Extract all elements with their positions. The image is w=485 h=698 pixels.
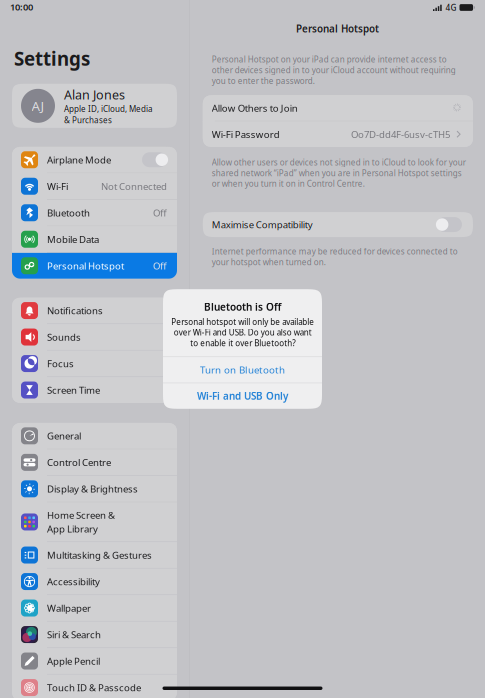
button[interactable]: Mobile Data (12, 226, 177, 252)
staticText: Personal Hotspot on your iPad can provid… (212, 54, 456, 86)
button[interactable]: Allow Others to Join (203, 95, 473, 121)
button[interactable]: Wi-Fi and USB Only (163, 383, 322, 409)
staticText: Wi-Fi Password (212, 128, 280, 140)
staticText: Touch ID & Passcode (47, 681, 141, 694)
button[interactable]: Display & Brightness (12, 476, 177, 502)
staticText: Screen Time (47, 384, 100, 396)
staticText: Accessibility (47, 575, 100, 588)
button[interactable]: Wi-Fi (12, 173, 177, 199)
staticText: Home Screen & (47, 509, 115, 521)
staticText: Maximise Compatibility (212, 218, 313, 231)
button[interactable]: Personal Hotspot (12, 253, 177, 279)
staticText: Personal Hotspot (47, 259, 124, 272)
staticText: Oo7D-dd4F-6usv-cTH5 (351, 128, 450, 140)
staticText: AJ (31, 97, 44, 115)
staticText: Personal Hotspot (296, 22, 379, 35)
staticText: Focus (47, 357, 74, 370)
staticText: General (47, 429, 81, 442)
button[interactable]: Wi-Fi Password (203, 121, 473, 147)
staticText: Allow Others to Join (212, 102, 298, 114)
staticText: Off (153, 259, 167, 272)
staticText: Control Centre (47, 456, 111, 469)
button[interactable]: Screen Time (12, 377, 177, 403)
button[interactable]: Sounds (12, 324, 177, 350)
button[interactable]: Turn on Bluetooth (163, 357, 322, 383)
button[interactable]: Touch ID & Passcode (12, 675, 177, 698)
button[interactable]: Notifications (12, 298, 177, 323)
button[interactable]: General (12, 423, 177, 449)
staticText: Wi-Fi and USB Only (197, 389, 288, 403)
staticText: Personal hotspot will only be available … (171, 316, 314, 348)
staticText: Mobile Data (47, 233, 99, 246)
staticText: Sounds (47, 331, 81, 343)
staticText: Wallpaper (47, 602, 91, 614)
button[interactable]: Accessibility (12, 569, 177, 594)
staticText: Settings (14, 46, 90, 71)
staticText: Not Connected (101, 180, 167, 193)
staticText: Siri & Search (47, 628, 101, 641)
staticText: Apple ID, iCloud, Media (64, 103, 153, 114)
staticText: Allow other users or devices not signed … (212, 157, 466, 189)
staticText: Notifications (47, 304, 103, 317)
button[interactable]: Maximise Compatibility (203, 212, 473, 237)
button[interactable]: AJ (12, 84, 177, 128)
staticText: & Purchases (64, 115, 112, 125)
staticText: Airplane Mode (47, 153, 111, 166)
staticText: Display & Brightness (47, 482, 138, 495)
button[interactable]: Wallpaper (12, 595, 177, 621)
staticText: Bluetooth (47, 206, 90, 219)
staticText: 10:00 (10, 1, 33, 13)
staticText: Alan Jones (64, 86, 125, 103)
button[interactable]: Siri & Search (12, 622, 177, 647)
staticText: Internet performance may be reduced for … (212, 246, 458, 267)
staticText: Wi-Fi (47, 180, 68, 193)
button[interactable]: Control Centre (12, 449, 177, 475)
staticText: Turn on Bluetooth (200, 363, 285, 376)
staticText: 4G (445, 2, 456, 13)
button[interactable]: Bluetooth (12, 200, 177, 226)
staticText: Apple Pencil (47, 655, 100, 667)
button[interactable]: Home Screen & (12, 502, 177, 541)
button[interactable]: Airplane Mode (12, 147, 177, 173)
staticText: Off (153, 206, 167, 219)
button[interactable]: Focus (12, 351, 177, 376)
button[interactable]: Apple Pencil (12, 648, 177, 674)
staticText: App Library (47, 522, 98, 535)
staticText: Bluetooth is Off (204, 300, 281, 313)
staticText: Multitasking & Gestures (47, 549, 152, 561)
button[interactable]: Multitasking & Gestures (12, 542, 177, 568)
